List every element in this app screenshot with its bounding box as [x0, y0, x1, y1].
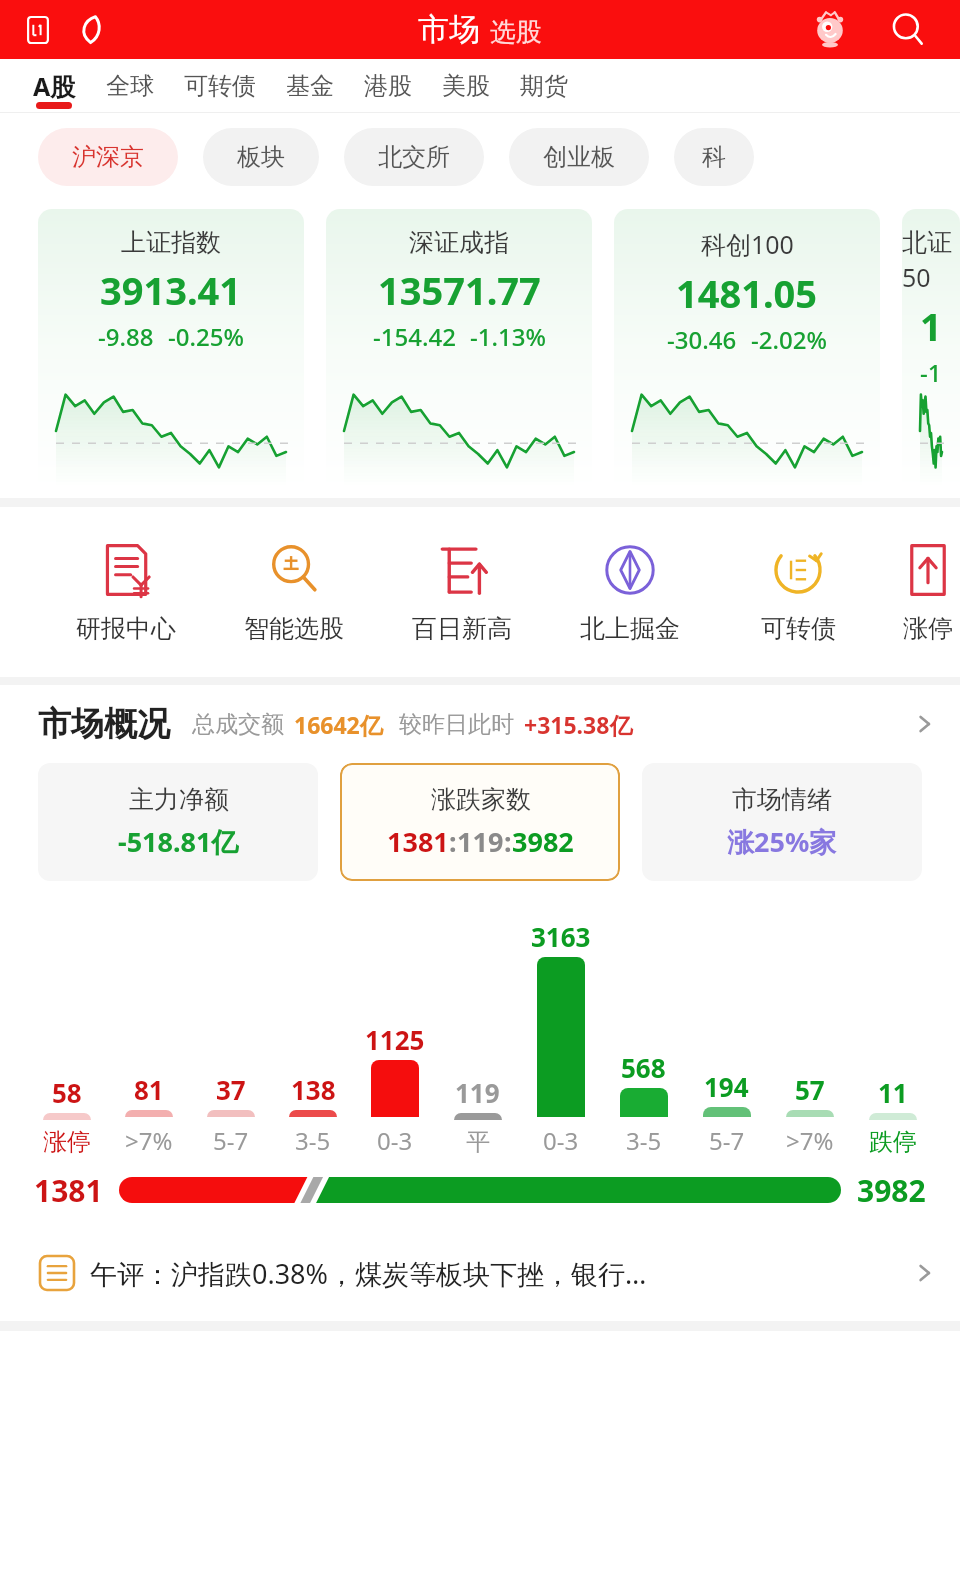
staticText: 119: [455, 1075, 500, 1110]
staticText: 北上掘金: [580, 613, 680, 644]
staticText: 3163: [531, 919, 591, 954]
button[interactable]: 可转债: [728, 541, 868, 644]
staticText: 11: [878, 1075, 908, 1110]
staticText: 涨停: [903, 613, 953, 644]
staticText: 午评：沪指跌0.38%，煤炭等板块下挫，银行…: [90, 1255, 647, 1292]
staticText: 智能选股: [244, 613, 344, 644]
staticText: 涨停: [43, 1127, 91, 1157]
button[interactable]: Night mode: [68, 8, 112, 52]
staticText: 138: [291, 1072, 336, 1107]
staticText: 北证50: [902, 227, 960, 294]
staticText: :: [504, 823, 512, 860]
staticText: 选股: [490, 16, 542, 49]
button[interactable]: 基金: [271, 59, 349, 113]
staticText: +315.38亿: [524, 709, 633, 740]
button[interactable]: 午评：沪指跌0.38%，煤炭等板块下挫，银行…: [0, 1241, 960, 1305]
button[interactable]: 市场概况: [0, 685, 960, 763]
staticText: 深证成指: [409, 227, 509, 258]
staticText: 1125: [365, 1022, 425, 1057]
staticText: -518.81亿: [118, 823, 239, 860]
button[interactable]: 北证50: [902, 209, 960, 491]
staticText: 3982: [512, 823, 574, 860]
staticText: 上证指数: [121, 227, 221, 258]
staticText: 基金: [286, 71, 334, 101]
staticText: 百日新高: [412, 613, 512, 644]
button[interactable]: 涨跌家数: [340, 763, 620, 881]
button[interactable]: 全球: [91, 59, 169, 113]
staticText: A股: [33, 69, 76, 103]
button[interactable]: 可转债: [169, 59, 271, 113]
staticText: 1381: [34, 1170, 103, 1211]
staticText: -154.42: [373, 320, 456, 353]
staticText: 13571.77: [378, 264, 541, 316]
staticText: 北交所: [378, 142, 450, 172]
staticText: 1481.05: [676, 267, 818, 319]
staticText: 3982: [857, 1170, 926, 1211]
staticText: 119: [457, 823, 504, 860]
staticText: -1.13%: [470, 320, 546, 353]
staticText: 1: [920, 300, 942, 352]
staticText: 美股: [442, 71, 490, 101]
button[interactable]: 期货: [505, 59, 583, 113]
staticText: 可转债: [761, 613, 836, 644]
button[interactable]: 智能选股: [224, 541, 364, 644]
button[interactable]: 深证成指: [326, 209, 592, 491]
staticText: -1: [920, 356, 942, 389]
staticText: 1381: [387, 823, 449, 860]
staticText: 总成交额: [192, 710, 284, 739]
staticText: 3913.41: [100, 264, 242, 316]
staticText: >7%: [786, 1124, 834, 1157]
staticText: 市场: [418, 10, 480, 49]
button[interactable]: 研报中心: [56, 541, 196, 644]
staticText: 跌停: [869, 1127, 917, 1157]
staticText: 科: [702, 142, 726, 172]
staticText: 5-7: [213, 1124, 249, 1157]
staticText: 板块: [237, 142, 285, 172]
button[interactable]: 沪深京: [38, 128, 178, 186]
staticText: 港股: [364, 71, 412, 101]
button[interactable]: 科创100: [614, 209, 880, 491]
button[interactable]: 北上掘金: [560, 541, 700, 644]
button[interactable]: 创业板: [509, 128, 649, 186]
button[interactable]: 板块: [203, 128, 319, 186]
staticText: 3-5: [626, 1124, 662, 1157]
button[interactable]: Search: [882, 4, 934, 56]
staticText: -0.25%: [168, 320, 244, 353]
staticText: 37: [216, 1072, 246, 1107]
staticText: 期货: [520, 71, 568, 101]
button[interactable]: 主力净额: [38, 763, 318, 881]
staticText: 可转债: [184, 71, 256, 101]
staticText: -2.02%: [751, 323, 827, 356]
staticText: 3-5: [295, 1124, 331, 1157]
staticText: 0-3: [377, 1124, 413, 1157]
button[interactable]: 市场情绪: [642, 763, 922, 881]
button[interactable]: A股: [18, 59, 91, 113]
staticText: 平: [466, 1127, 490, 1157]
button[interactable]: 涨停: [896, 541, 960, 644]
staticText: -9.88: [98, 320, 154, 353]
staticText: 568: [621, 1050, 666, 1085]
button[interactable]: 百日新高: [392, 541, 532, 644]
button[interactable]: 港股: [349, 59, 427, 113]
staticText: 市场概况: [38, 703, 170, 745]
staticText: 沪深京: [72, 142, 144, 172]
staticText: 81: [134, 1072, 164, 1107]
button[interactable]: 上证指数: [38, 209, 304, 491]
staticText: 市场情绪: [732, 784, 832, 815]
staticText: 全球: [106, 71, 154, 101]
staticText: :: [449, 823, 457, 860]
button[interactable]: Assistant: [804, 4, 856, 56]
staticText: 研报中心: [76, 613, 176, 644]
staticText: 涨25%家: [727, 823, 837, 860]
staticText: 58: [52, 1075, 82, 1110]
staticText: 16642亿: [294, 709, 383, 740]
button[interactable]: Level 1 quote: [20, 12, 56, 48]
staticText: >7%: [125, 1124, 173, 1157]
staticText: 较昨日此时: [399, 710, 514, 739]
staticText: -30.46: [667, 323, 737, 356]
staticText: 194: [704, 1069, 749, 1104]
button[interactable]: 美股: [427, 59, 505, 113]
button[interactable]: 北交所: [344, 128, 484, 186]
button[interactable]: 科: [674, 128, 754, 186]
staticText: 主力净额: [129, 784, 229, 815]
